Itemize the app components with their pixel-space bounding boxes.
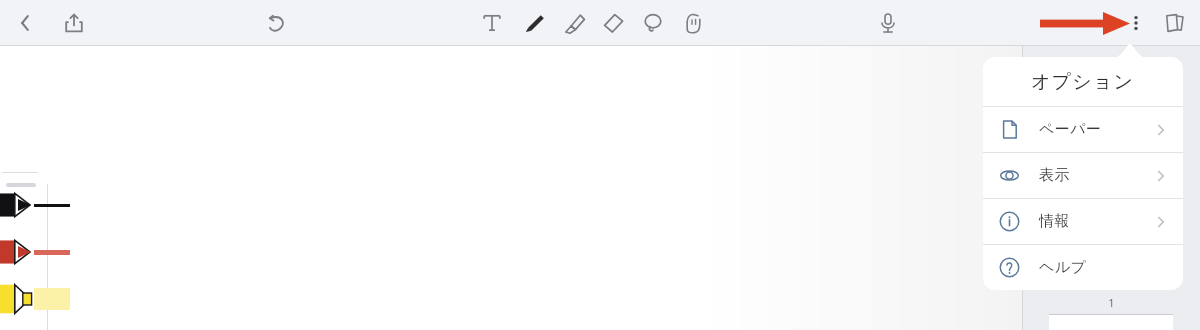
staticText: 情報: [1039, 212, 1070, 231]
button[interactable]: Text tool: [476, 7, 508, 39]
button[interactable]: Record audio: [872, 7, 904, 39]
staticText: オプション: [1031, 70, 1135, 94]
staticText: 表示: [1039, 166, 1070, 185]
staticText: ヘルプ: [1039, 258, 1087, 277]
staticText: 1: [1108, 295, 1115, 310]
button[interactable]: Eraser tool: [597, 7, 629, 39]
button[interactable]: Pen: [0, 282, 38, 316]
button[interactable]: Pen tool: [517, 7, 549, 39]
button[interactable]: 表示: [983, 153, 1183, 198]
button[interactable]: 情報: [983, 199, 1183, 244]
button[interactable]: Hand tool: [676, 7, 708, 39]
button[interactable]: ペーパー: [983, 107, 1183, 152]
button[interactable]: ヘルプ: [983, 245, 1183, 290]
button[interactable]: Lasso tool: [637, 7, 669, 39]
button[interactable]: Undo: [260, 7, 292, 39]
button[interactable]: Share: [58, 7, 90, 39]
button[interactable]: Pages: [1158, 7, 1190, 39]
button[interactable]: Pen: [0, 188, 38, 222]
button[interactable]: Pen: [0, 235, 38, 269]
button[interactable]: Back: [10, 7, 42, 39]
button[interactable]: Highlighter tool: [557, 7, 589, 39]
button[interactable]: More options: [1120, 7, 1152, 39]
staticText: ペーパー: [1039, 120, 1102, 139]
